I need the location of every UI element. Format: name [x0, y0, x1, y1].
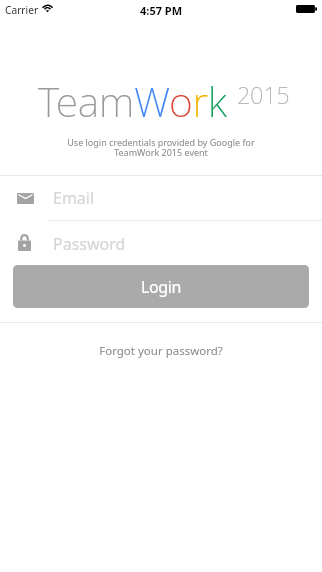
staticText: 4:57 PM — [140, 3, 183, 18]
button[interactable]: Login — [13, 265, 309, 308]
other: Password — [18, 234, 31, 251]
staticText: Email — [53, 187, 95, 209]
other: Battery full — [296, 5, 317, 13]
staticText: TeamWork — [38, 73, 227, 129]
button[interactable]: Password — [0, 221, 322, 265]
staticText: Use login credentials provided by Google… — [0, 136, 322, 159]
staticText: Password — [53, 233, 126, 255]
other: Email — [17, 193, 34, 204]
other: Wi-Fi — [42, 4, 53, 13]
staticText: Carrier — [5, 3, 39, 17]
staticText: Login — [141, 276, 181, 298]
button[interactable]: Forgot your password? — [0, 338, 322, 364]
staticText: 2015 — [237, 79, 290, 111]
button[interactable]: Email — [0, 176, 322, 220]
